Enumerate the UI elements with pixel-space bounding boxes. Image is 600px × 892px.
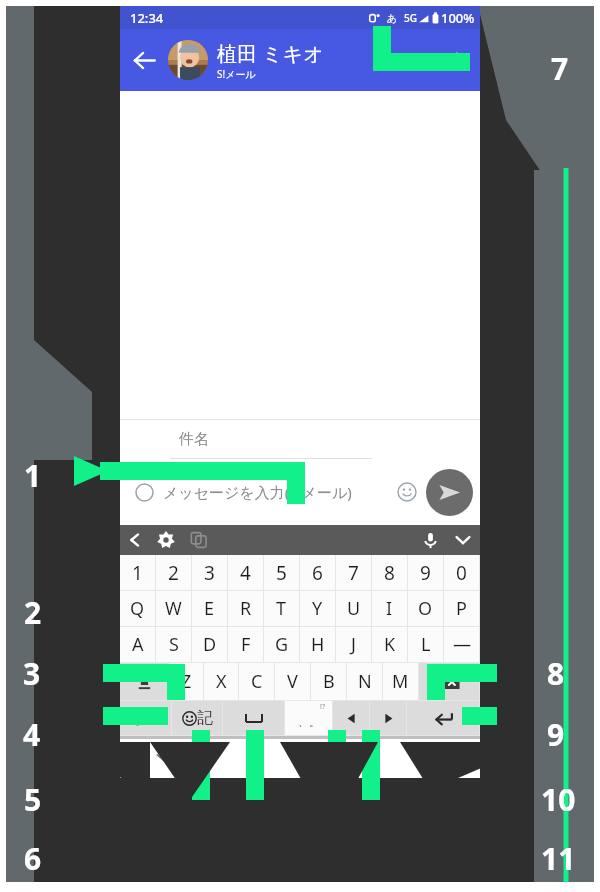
staticText: 0 <box>456 560 467 586</box>
staticText: 10 <box>541 779 576 820</box>
button[interactable]: P <box>444 591 479 626</box>
button[interactable]: N <box>347 663 382 700</box>
button[interactable]: F <box>228 627 263 662</box>
staticText: X <box>216 669 227 694</box>
staticText: 1 <box>24 455 42 496</box>
staticText: 11 <box>541 838 576 879</box>
button[interactable]: U <box>336 591 371 626</box>
button[interactable]: 5 <box>264 555 299 590</box>
staticText: 5 <box>24 779 42 820</box>
button[interactable]: Add attachment <box>127 475 161 509</box>
staticText: G <box>275 632 289 657</box>
button[interactable]: Z <box>169 663 203 700</box>
button[interactable]: R <box>228 591 263 626</box>
staticText: B <box>323 669 335 694</box>
button[interactable]: 1 <box>120 555 155 590</box>
staticText: 6 <box>24 838 42 879</box>
button[interactable]: Hide keyboard <box>150 744 176 770</box>
button[interactable]: Move cursor left <box>333 701 369 735</box>
button[interactable]: D <box>192 627 227 662</box>
button[interactable]: W <box>156 591 191 626</box>
button[interactable]: Settings <box>150 525 182 555</box>
button[interactable]: M <box>383 663 418 700</box>
staticText: 2 <box>24 592 42 633</box>
staticText: メッセージを入力(S!メール) <box>163 482 389 502</box>
button[interactable]: Send <box>426 469 473 516</box>
button[interactable]: A <box>120 627 155 662</box>
button[interactable]: Contact photo <box>168 40 208 80</box>
staticText: — <box>453 632 471 657</box>
button[interactable]: Voice input <box>414 525 446 555</box>
staticText: P <box>456 596 467 621</box>
button[interactable]: 4 <box>228 555 263 590</box>
staticText: U <box>347 596 361 621</box>
button[interactable]: 2 <box>156 555 191 590</box>
button[interactable]: C <box>239 663 274 700</box>
staticText: L <box>421 632 431 657</box>
staticText: F <box>241 632 251 657</box>
staticText: Q <box>130 596 145 621</box>
staticText: あ <box>387 12 398 25</box>
button[interactable]: B <box>311 663 346 700</box>
button[interactable]: E <box>192 591 227 626</box>
staticText: 5G <box>404 11 417 25</box>
button[interactable]: 0 <box>444 555 479 590</box>
button[interactable]: Q <box>120 591 155 626</box>
button[interactable]: X <box>204 663 238 700</box>
staticText: V <box>287 669 298 694</box>
staticText: 2 <box>168 560 179 586</box>
button[interactable]: G <box>264 627 299 662</box>
staticText: 4 <box>240 560 251 586</box>
button[interactable]: More options <box>434 37 480 83</box>
button[interactable]: V <box>275 663 310 700</box>
button[interactable]: H <box>300 627 335 662</box>
button[interactable]: Emoji <box>389 474 425 510</box>
staticText: Z <box>181 669 192 694</box>
staticText: あ <box>127 708 144 728</box>
button[interactable]: 9 <box>408 555 443 590</box>
button[interactable]: O <box>408 591 443 626</box>
button[interactable]: T <box>264 591 299 626</box>
staticText: 9 <box>420 560 431 586</box>
staticText: A <box>132 632 144 657</box>
button[interactable]: — <box>444 627 479 662</box>
staticText: 3 <box>204 560 215 586</box>
staticText: 植田 ミキオ <box>217 40 324 67</box>
button[interactable]: Collapse keyboard <box>446 525 480 555</box>
button[interactable]: Emoji and symbols <box>172 701 222 735</box>
button[interactable]: Move cursor right <box>370 701 406 735</box>
staticText: 5 <box>276 560 287 586</box>
button[interactable]: Enter <box>407 701 479 735</box>
button[interactable]: 7 <box>336 555 371 590</box>
staticText: N <box>358 669 372 694</box>
staticText: 7 <box>348 560 359 586</box>
button[interactable]: 3 <box>192 555 227 590</box>
button[interactable]: L <box>408 627 443 662</box>
staticText: 4 <box>23 714 41 755</box>
button[interactable]: J <box>336 627 371 662</box>
button[interactable]: あ <box>120 701 171 735</box>
button[interactable]: Space <box>223 701 284 735</box>
button[interactable]: Clipboard <box>182 525 216 555</box>
staticText: I <box>386 596 393 621</box>
staticText: J <box>351 632 356 657</box>
button[interactable]: Y <box>300 591 335 626</box>
staticText: !? <box>320 702 325 712</box>
staticText: 1 <box>132 560 143 586</box>
staticText: M <box>392 669 409 694</box>
staticText: 、。 <box>298 715 320 729</box>
staticText: W <box>165 596 182 621</box>
button[interactable]: 6 <box>300 555 335 590</box>
staticText: 6 <box>312 560 323 586</box>
button[interactable]: !? <box>285 701 332 735</box>
button[interactable]: 8 <box>372 555 407 590</box>
button[interactable]: K <box>372 627 407 662</box>
button[interactable]: S <box>156 627 191 662</box>
button[interactable]: Previous <box>120 525 150 555</box>
button[interactable]: Backspace <box>419 663 479 700</box>
button[interactable]: I <box>372 591 407 626</box>
staticText: 9 <box>547 714 565 755</box>
button[interactable]: Back <box>120 36 168 84</box>
button[interactable]: Shift <box>120 663 168 700</box>
